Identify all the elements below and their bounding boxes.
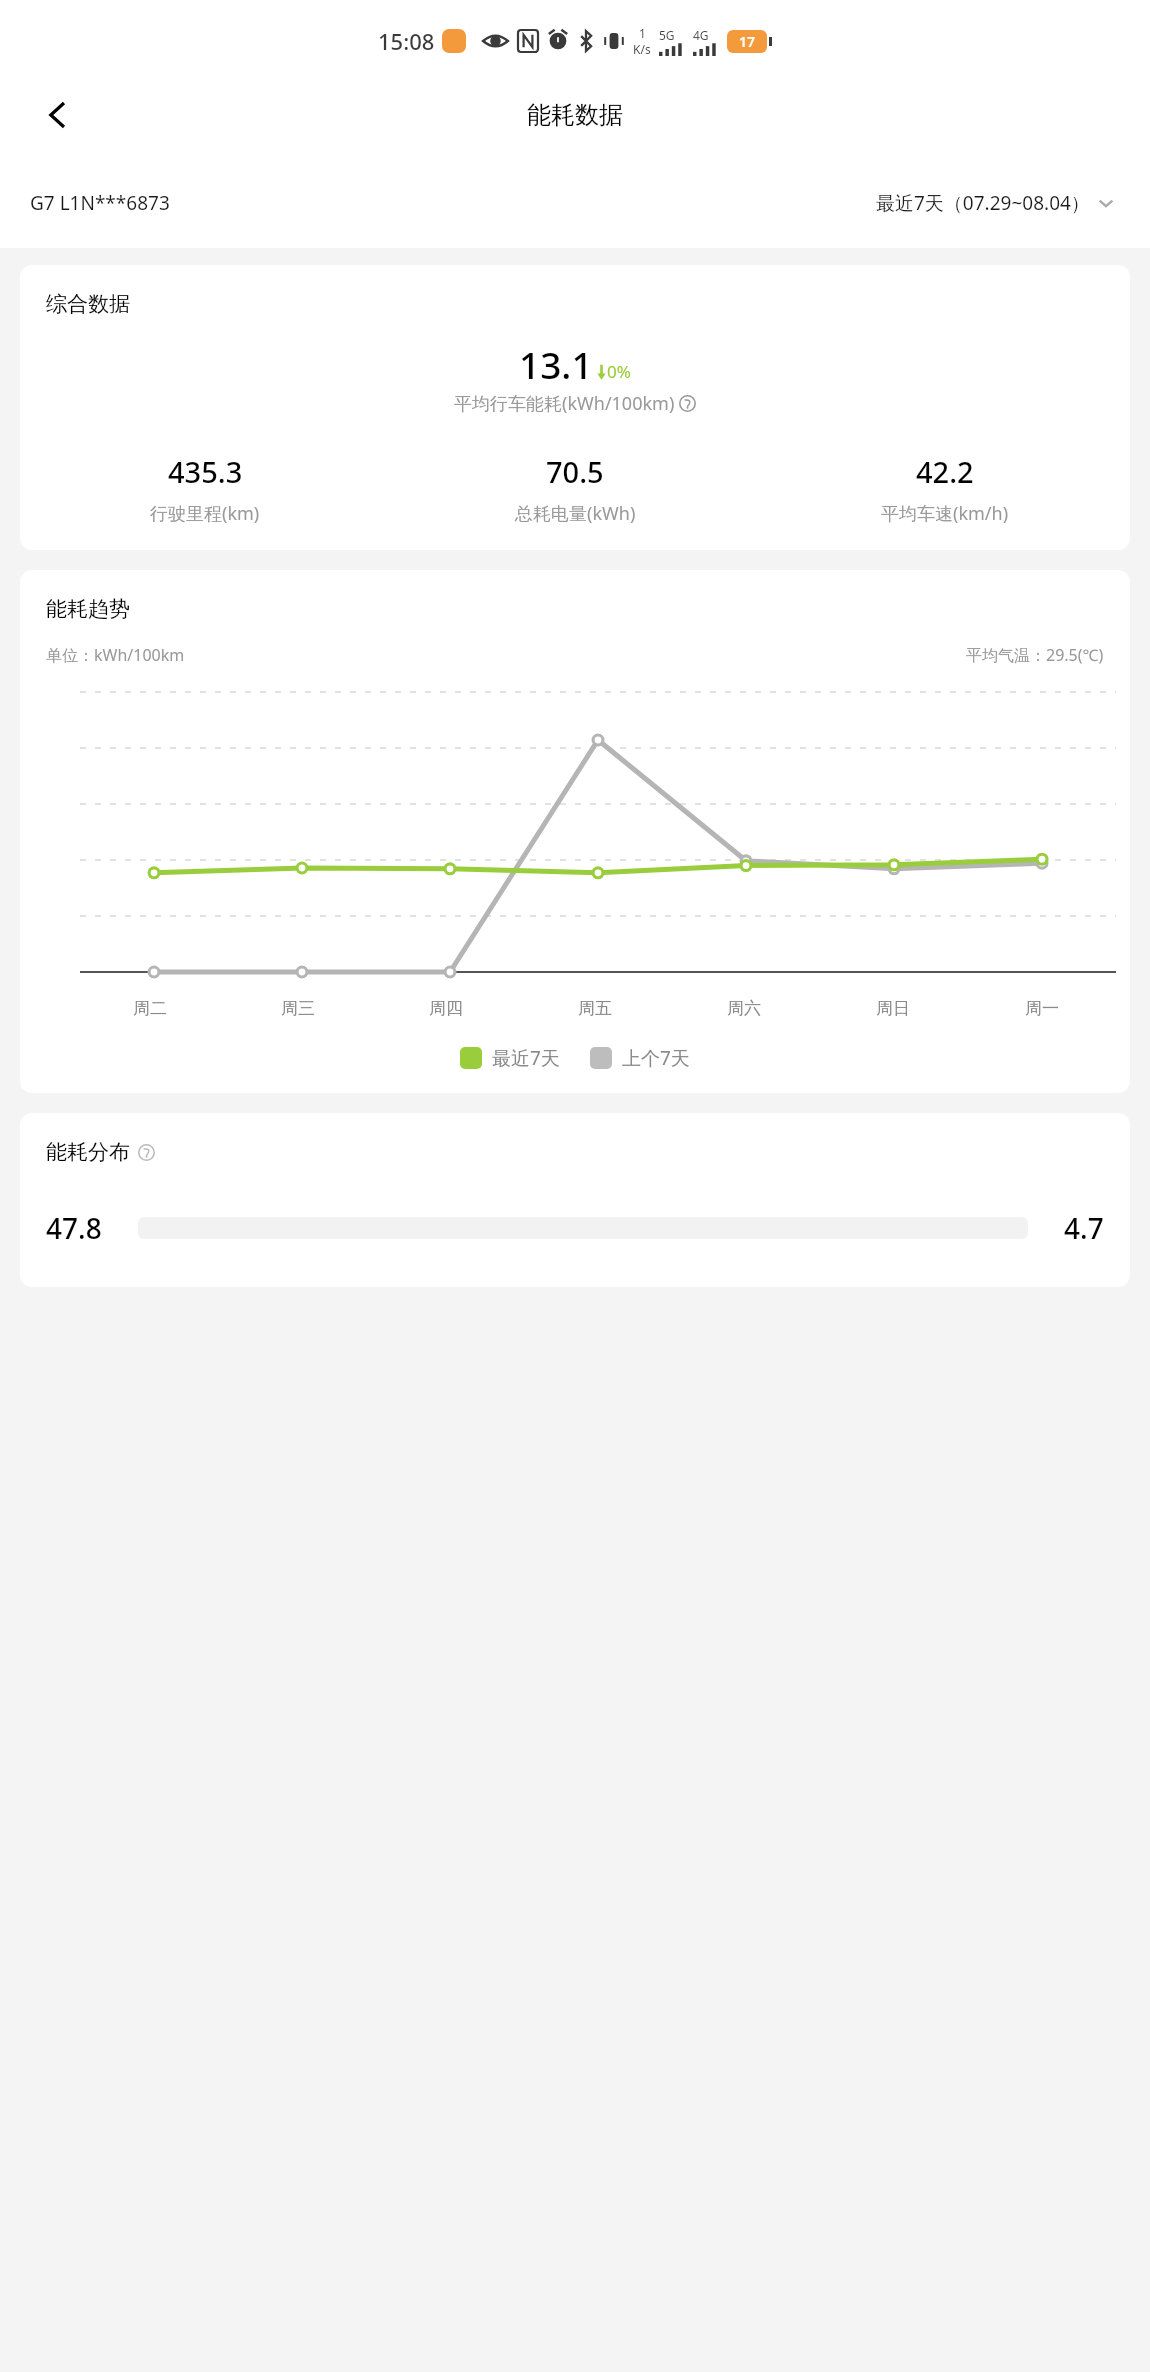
button[interactable]: 42.2 — [760, 452, 1130, 526]
staticText: 能耗趋势 — [46, 596, 130, 622]
button[interactable]: 综合数据 — [20, 265, 1130, 550]
staticText: 周六 — [727, 998, 761, 1019]
staticText: 能耗分布 — [46, 1139, 130, 1165]
staticText: 最近7天（07.29~08.04） — [876, 190, 1090, 216]
staticText: 1 — [639, 25, 646, 41]
staticText: 70.5 — [546, 452, 604, 491]
staticText: 平均车速(km/h) — [881, 501, 1009, 526]
staticText: 平均气温：29.5(℃) — [966, 644, 1104, 666]
staticText: K/s — [633, 41, 651, 57]
staticText: 0% — [607, 360, 631, 383]
staticText: 周三 — [281, 998, 315, 1019]
staticText: 47.8 — [46, 1209, 102, 1247]
staticText: 4G — [693, 27, 709, 43]
staticText: 周日 — [876, 998, 910, 1019]
button[interactable]: 435.3 — [20, 452, 390, 526]
staticText: 435.3 — [168, 452, 243, 491]
staticText: 综合数据 — [46, 291, 130, 317]
staticText: 周二 — [133, 998, 167, 1019]
button[interactable]: 能耗趋势 — [20, 570, 1130, 1093]
staticText: 5G — [659, 27, 675, 43]
button[interactable]: 能耗分布 — [20, 1113, 1130, 1287]
button[interactable]: 最近7天（07.29~08.04） — [872, 184, 1120, 222]
staticText: 15:08 — [378, 26, 435, 56]
staticText: 总耗电量(kWh) — [515, 501, 636, 526]
staticText: 单位：kWh/100km — [46, 644, 185, 666]
staticText: 13.1 — [519, 339, 593, 389]
button[interactable]: 最近7天 — [460, 1045, 560, 1071]
button[interactable]: Back — [34, 91, 82, 139]
staticText: 周一 — [1025, 998, 1059, 1019]
staticText: 17 — [739, 32, 756, 51]
staticText: 周四 — [429, 998, 463, 1019]
staticText: G7 L1N***6873 — [30, 190, 170, 216]
staticText: 42.2 — [916, 452, 974, 491]
button[interactable]: 70.5 — [390, 452, 760, 526]
button[interactable]: 上个7天 — [590, 1045, 690, 1071]
staticText: 上个7天 — [622, 1045, 690, 1071]
staticText: 平均行车能耗(kWh/100km) — [454, 391, 675, 416]
staticText: 能耗数据 — [527, 100, 623, 130]
staticText: 最近7天 — [492, 1045, 560, 1071]
staticText: 周五 — [578, 998, 612, 1019]
staticText: 行驶里程(km) — [150, 501, 260, 526]
staticText: 4.7 — [1064, 1209, 1104, 1247]
